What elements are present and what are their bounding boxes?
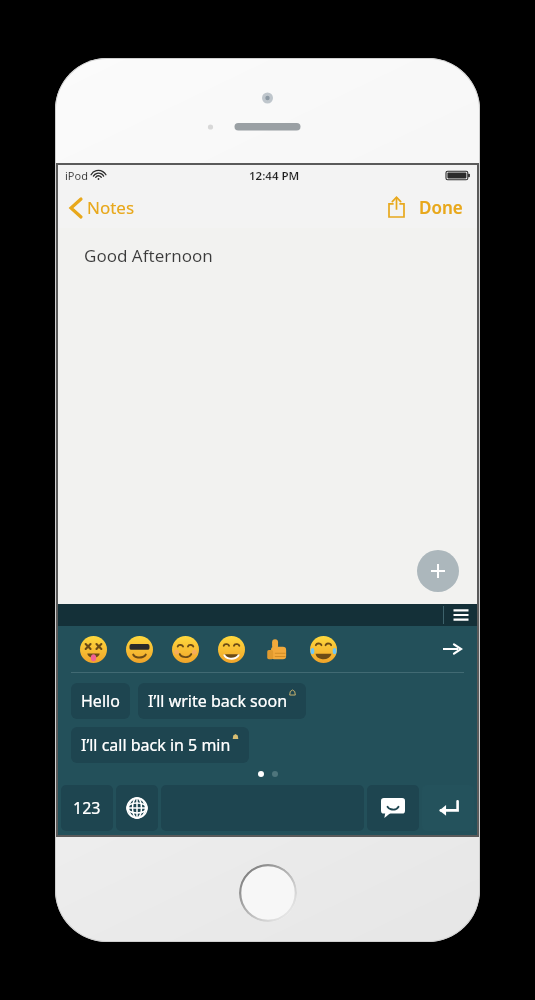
staticText: Hello	[81, 690, 120, 712]
button[interactable]: Emoji	[116, 626, 162, 672]
button[interactable]: Emoji	[367, 785, 419, 831]
button[interactable]: Done	[415, 192, 467, 223]
button[interactable]: I’ll write back soon	[138, 683, 306, 719]
staticText: I’ll call back in 5 min	[81, 734, 231, 756]
button[interactable]: Hello	[71, 683, 130, 719]
button[interactable]: Home	[239, 864, 297, 922]
staticText: Done	[419, 196, 463, 219]
button[interactable]: Menu	[443, 604, 477, 626]
button[interactable]: Share	[381, 192, 411, 222]
staticText: I’ll write back soon	[148, 690, 288, 712]
button[interactable]: Change keyboard	[116, 785, 158, 831]
staticText: Good Afternoon	[84, 244, 213, 267]
staticText: iPod	[65, 168, 88, 183]
staticText: 123	[73, 797, 101, 819]
button[interactable]: More emoji	[435, 632, 469, 666]
button[interactable]: I’ll call back in 5 min	[71, 727, 249, 763]
button[interactable]: Notes	[68, 192, 137, 223]
staticText: 12:44 PM	[249, 168, 300, 184]
button[interactable]: Emoji	[208, 626, 254, 672]
button[interactable]: Emoji	[162, 626, 208, 672]
button[interactable]: Add	[417, 550, 459, 592]
button[interactable]: Emoji	[254, 626, 300, 672]
button[interactable]: Emoji	[300, 626, 346, 672]
button[interactable]: 123	[61, 785, 113, 831]
staticText: Notes	[87, 196, 135, 219]
button[interactable]: Return	[422, 785, 474, 831]
button[interactable]: Emoji	[70, 626, 116, 672]
